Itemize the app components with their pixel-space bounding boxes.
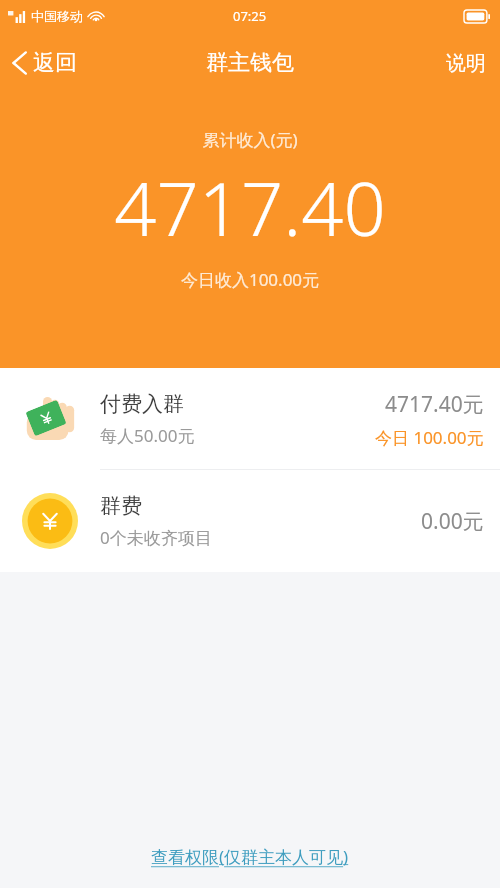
staticText: 0个未收齐项目 (100, 526, 212, 549)
staticText: 群费 (100, 493, 142, 519)
staticText: 累计收入(元) (0, 128, 500, 151)
staticText: 每人50.00元 (100, 424, 195, 447)
staticText: 付费入群 (100, 391, 184, 417)
staticText: 查看权限(仅群主本人可见) (151, 845, 349, 868)
other: 返回 (12, 50, 27, 76)
staticText: 0.00元 (421, 507, 484, 536)
staticText: 返回 (33, 49, 77, 77)
staticText: 今日 100.00元 (375, 426, 484, 449)
staticText: 4717.40元 (385, 390, 484, 419)
button[interactable]: 说明 (432, 43, 500, 84)
staticText: 4717.40 (0, 157, 500, 258)
button[interactable]: 查看权限(仅群主本人可见) (135, 839, 365, 874)
button[interactable]: 返回 (0, 41, 91, 85)
staticText: 今日收入100.00元 (0, 268, 500, 291)
staticText: 中国移动 (31, 8, 83, 24)
button[interactable]: 付费入群 (0, 368, 500, 470)
staticText: 说明 (446, 51, 486, 76)
staticText: 07:25 (233, 7, 267, 25)
staticText: 群主钱包 (206, 49, 294, 77)
button[interactable]: 群费 (0, 470, 500, 572)
